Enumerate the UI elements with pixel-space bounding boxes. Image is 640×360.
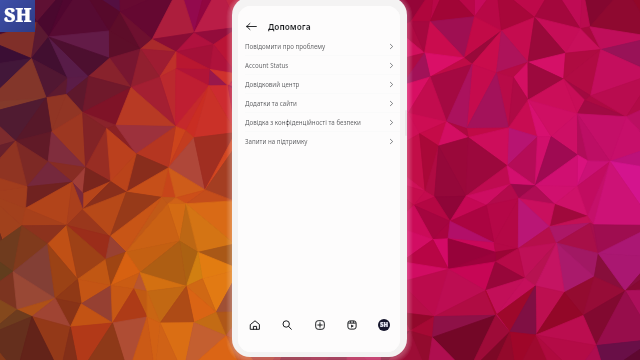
- staticText: Довідка з конфіденційності та безпеки: [245, 118, 388, 126]
- button[interactable]: Search: [278, 316, 296, 334]
- button[interactable]: Back: [243, 18, 259, 34]
- staticText: Допомога: [268, 21, 311, 32]
- button[interactable]: Додатки та сайти: [238, 94, 400, 112]
- button[interactable]: Home: [246, 316, 264, 334]
- button[interactable]: Довідковий центр: [238, 75, 400, 93]
- staticText: Запити на підтримку: [245, 137, 388, 145]
- button[interactable]: Повідомити про проблему: [238, 37, 400, 55]
- button[interactable]: Profile: [375, 316, 393, 334]
- button[interactable]: Create: [311, 316, 329, 334]
- button[interactable]: Довідка з конфіденційності та безпеки: [238, 113, 400, 131]
- staticText: Додатки та сайти: [245, 99, 388, 107]
- staticText: Повідомити про проблему: [245, 42, 388, 50]
- button[interactable]: Account Status: [238, 56, 400, 74]
- button[interactable]: Запити на підтримку: [238, 132, 400, 150]
- staticText: SH: [4, 2, 32, 28]
- staticText: Account Status: [245, 61, 388, 69]
- staticText: SH: [380, 321, 389, 329]
- button[interactable]: Reels: [343, 316, 361, 334]
- staticText: Довідковий центр: [245, 80, 388, 88]
